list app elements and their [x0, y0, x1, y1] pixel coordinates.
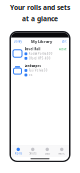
- staticText: More: [58, 152, 65, 155]
- staticText: Kodak Portra 400: [29, 52, 53, 55]
- staticText: Rolls: [15, 152, 22, 155]
- staticText: Library: [13, 40, 21, 43]
- staticText: Ilford HP5 400: [29, 57, 51, 60]
- staticText: Stats: [45, 152, 50, 155]
- button[interactable]: Library: [13, 40, 21, 43]
- staticText: Travel Roll: [24, 47, 40, 51]
- staticText: Landscapes: [24, 64, 40, 68]
- staticText: Fuji Velvia 50: [29, 69, 48, 72]
- button[interactable]: Travel Roll: [13, 45, 67, 62]
- staticText: Edit: [61, 40, 66, 43]
- button[interactable]: Edit: [61, 40, 66, 43]
- staticText: Active: [59, 47, 67, 51]
- staticText: Shots: [29, 152, 36, 155]
- button[interactable]: More: [54, 146, 69, 157]
- staticText: 36: [29, 73, 33, 77]
- staticText: My Library: [31, 39, 52, 44]
- button[interactable]: Stats: [40, 146, 54, 157]
- button[interactable]: Landscapes: [13, 62, 67, 79]
- button[interactable]: Rolls: [11, 146, 25, 157]
- staticText: at a glance: [22, 14, 58, 23]
- staticText: Your rolls and sets: [10, 3, 70, 12]
- button[interactable]: Shots: [25, 146, 40, 157]
